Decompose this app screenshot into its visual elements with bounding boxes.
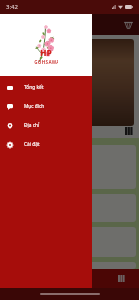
button[interactable]: Người tiêu dùng cần <box>3 145 136 189</box>
staticText: Tổng kết <box>24 84 44 91</box>
button[interactable] <box>4 39 134 126</box>
button[interactable]: Địa chỉ <box>0 116 92 135</box>
button[interactable]: Mục đích <box>0 97 92 116</box>
button[interactable]: Tab 3 <box>69 269 104 288</box>
button[interactable]: Grid view <box>125 127 133 135</box>
staticText: Mục đích <box>24 103 45 110</box>
button[interactable]: ất các bệnh mãn <box>3 262 136 269</box>
button[interactable]: Cài đặt <box>0 135 92 154</box>
button[interactable]: Nhận thức tự nhiên đều <box>3 194 136 222</box>
staticText: 3:42 <box>6 3 18 11</box>
button[interactable]: Tab 4 <box>104 269 139 288</box>
button[interactable] <box>3 227 136 257</box>
staticText: Người tiêu dùng cần <box>6 147 56 154</box>
staticText: GOHSAWA <box>34 59 58 65</box>
staticText: Cài đặt <box>24 141 40 148</box>
button[interactable]: Cart <box>121 18 135 32</box>
staticText: HP <box>40 47 52 59</box>
staticText: Địa chỉ <box>24 122 40 129</box>
button[interactable]: Tổng kết <box>0 78 92 97</box>
